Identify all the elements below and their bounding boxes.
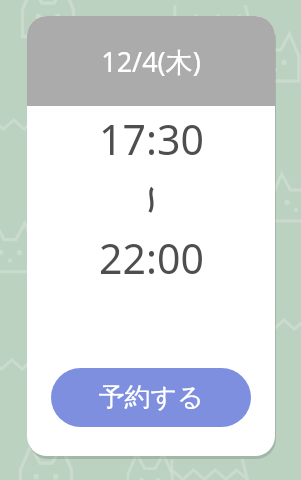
button[interactable]: 予約する <box>51 368 251 427</box>
staticText: 22:00 <box>99 230 204 286</box>
staticText: 予約する <box>98 381 204 414</box>
staticText: 12/4(木) <box>101 43 201 80</box>
staticText: 17:30 <box>99 111 204 167</box>
